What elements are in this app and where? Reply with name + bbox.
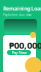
staticText: Remaining Loan bbox=[3, 5, 41, 12]
button[interactable]: Pay Now bbox=[7, 50, 31, 55]
staticText: ₱00,000 bbox=[9, 39, 41, 51]
staticText: Pay Now bbox=[11, 50, 26, 55]
staticText: Pay before due date bbox=[3, 13, 32, 17]
